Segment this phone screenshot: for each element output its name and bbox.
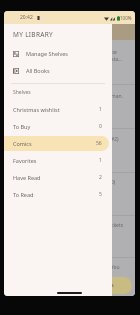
staticText: 0 [99, 123, 102, 130]
staticText: 5 [99, 191, 102, 198]
staticText: MY LIBRARY [13, 30, 54, 39]
staticText: Comics [13, 140, 32, 147]
staticText: To Read [13, 191, 34, 198]
staticText: All Books [26, 67, 50, 74]
staticText: 56 [96, 140, 102, 147]
button[interactable]: Comics [4, 135, 112, 152]
staticText: 20:42 [20, 14, 33, 21]
staticText: To Buy [13, 123, 31, 130]
staticText: 100% [120, 15, 132, 21]
staticText: Have Read [13, 174, 41, 181]
staticText: 1 [99, 106, 102, 113]
staticText: You [111, 264, 120, 271]
button[interactable]: Manage Shelves [4, 45, 112, 62]
staticText: Favorites [13, 157, 37, 164]
button[interactable]: To Read [4, 186, 112, 203]
staticText: Shelves [13, 89, 31, 96]
button[interactable]: Add record [96, 277, 132, 294]
button[interactable]: To Buy [4, 118, 112, 135]
staticText: 0) [111, 179, 116, 186]
button[interactable]: Favorites [4, 152, 112, 169]
staticText: 2 [99, 174, 102, 181]
staticText: sta... [111, 56, 123, 63]
staticText: ckets [111, 222, 124, 229]
staticText: 1 [99, 157, 102, 164]
staticText: man. [111, 93, 123, 100]
button[interactable]: Christmas wishlist [4, 101, 112, 118]
staticText: #2) [111, 136, 119, 143]
button[interactable]: Have Read [4, 169, 112, 186]
staticText: Christmas wishlist [13, 106, 60, 113]
staticText: ecords [98, 282, 114, 289]
staticText: be [111, 49, 117, 56]
button[interactable]: All Books [4, 62, 112, 79]
staticText: Manage Shelves [26, 50, 68, 57]
